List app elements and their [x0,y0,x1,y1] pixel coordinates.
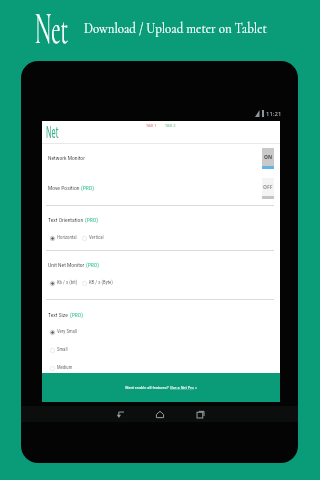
staticText: KB / s (Byte) [89,280,113,286]
staticText: Kb / s (bit) [57,280,78,286]
staticText: (PRO) [85,217,98,224]
staticText: Text Size [48,312,70,319]
staticText: OFF [263,184,273,191]
button[interactable]: Small [50,347,280,353]
staticText: 11:21 [266,110,282,118]
button[interactable]: Medium [50,365,280,371]
staticText: TAB 1 [146,123,157,128]
button[interactable]: Horizontal [50,235,82,241]
button[interactable]: TAB 2 [164,123,177,128]
button[interactable]: Home [145,407,175,422]
staticText: Net [35,1,68,55]
button[interactable]: Vertical [82,235,114,241]
staticText: TAB 2 [165,123,176,128]
staticText: (PRO) [86,262,99,269]
button[interactable]: KB / s (Byte) [82,280,114,286]
staticText: Unit Net Monitor [48,262,86,269]
button[interactable]: Kb / s (bit) [50,280,82,286]
button[interactable]: On [262,148,274,169]
staticText: Horizontal [57,235,77,241]
button[interactable]: TAB 1 [145,123,158,128]
staticText: (PRO) [81,185,94,192]
staticText: Small [57,347,68,353]
staticText: Medium [57,365,73,371]
staticText: Vertical [89,235,104,241]
staticText: Very Small [57,329,78,335]
staticText: ON [264,154,273,161]
staticText: (PRO) [70,312,83,319]
staticText: » [194,385,197,390]
staticText: Network Monitor [48,155,85,162]
button[interactable]: Back [105,407,135,422]
button[interactable]: Network Monitor [42,144,280,172]
staticText: Want enable all features? [125,385,170,390]
staticText: Net [46,121,58,143]
staticText: Use a Net Pro [170,385,194,390]
button[interactable]: Want enable all features? [42,373,280,402]
button[interactable]: Move Position [42,172,280,205]
staticText: Move Position [48,185,81,192]
button[interactable]: Recents [185,407,215,422]
button[interactable]: Very Small [50,329,280,335]
staticText: Download / Upload meter on Tablet [84,19,267,37]
staticText: Text Orientation [48,217,85,224]
button[interactable]: Off [262,178,274,199]
